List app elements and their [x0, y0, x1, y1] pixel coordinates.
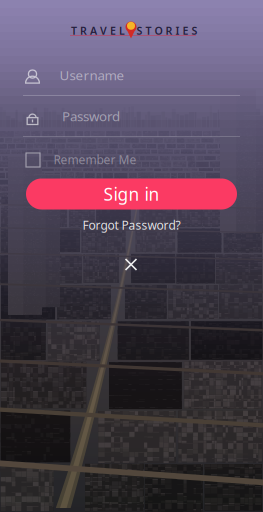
- staticText: T R A V E L: [71, 23, 125, 38]
- staticText: Forgot Password?: [82, 217, 180, 233]
- staticText: Password: [62, 107, 120, 125]
- button[interactable]: Forgot Password?: [76, 216, 186, 234]
- staticText: Remember Me: [53, 151, 136, 167]
- button[interactable]: Sign in: [26, 178, 237, 209]
- staticText: Sign in: [103, 182, 159, 205]
- staticText: Username: [59, 66, 124, 84]
- button[interactable]: Close: [116, 249, 146, 279]
- staticText: S T O R I E S: [136, 23, 197, 38]
